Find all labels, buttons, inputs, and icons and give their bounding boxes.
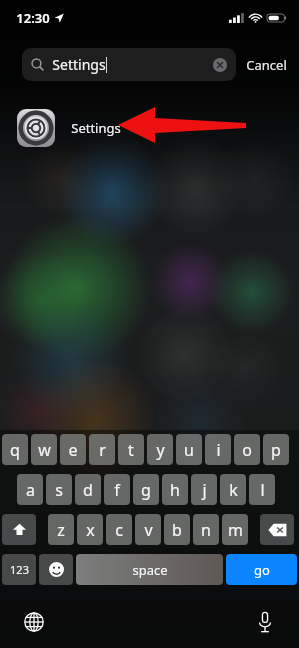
button[interactable]: z xyxy=(48,514,74,545)
button[interactable]: w xyxy=(31,434,57,465)
button[interactable]: r xyxy=(89,434,115,465)
button[interactable]: q xyxy=(2,434,28,465)
staticText: m xyxy=(228,519,243,541)
staticText: t xyxy=(128,439,134,461)
button[interactable]: u xyxy=(176,434,202,465)
button[interactable]: n xyxy=(193,514,219,545)
button[interactable]: y xyxy=(147,434,173,465)
staticText: j xyxy=(202,479,207,501)
button[interactable]: g xyxy=(133,474,159,505)
staticText: w xyxy=(38,439,51,461)
staticText: Settings xyxy=(71,119,121,137)
button[interactable]: k xyxy=(220,474,246,505)
staticText: c xyxy=(115,519,123,541)
button[interactable]: e xyxy=(60,434,86,465)
button[interactable]: space xyxy=(76,554,223,585)
staticText: p xyxy=(271,439,281,461)
staticText: g xyxy=(141,479,151,501)
button[interactable]: m xyxy=(222,514,248,545)
staticText: space xyxy=(132,561,168,579)
button[interactable]: Voice input xyxy=(251,608,279,636)
staticText: r xyxy=(99,439,106,461)
button[interactable]: c xyxy=(106,514,132,545)
button[interactable]: l xyxy=(249,474,275,505)
staticText: 123 xyxy=(10,562,29,577)
staticText: q xyxy=(10,439,20,461)
button[interactable]: s xyxy=(46,474,72,505)
staticText: s xyxy=(55,479,63,501)
staticText: x xyxy=(86,519,95,541)
button[interactable]: Change keyboard language xyxy=(20,608,48,636)
staticText: y xyxy=(156,439,165,461)
button[interactable]: Cancel xyxy=(236,50,297,80)
staticText: a xyxy=(26,479,35,501)
button[interactable]: b xyxy=(164,514,190,545)
button[interactable]: Settings xyxy=(0,104,299,152)
button[interactable]: j xyxy=(191,474,217,505)
button[interactable]: Shift xyxy=(2,514,36,545)
button[interactable]: go xyxy=(226,554,297,585)
button[interactable]: d xyxy=(75,474,101,505)
staticText: n xyxy=(201,519,211,541)
staticText: l xyxy=(260,479,265,501)
button[interactable]: a xyxy=(17,474,43,505)
staticText: u xyxy=(184,439,194,461)
button[interactable]: f xyxy=(104,474,130,505)
staticText: z xyxy=(57,519,65,541)
button[interactable]: Clear text xyxy=(213,58,227,72)
staticText: go xyxy=(254,561,270,579)
button[interactable]: h xyxy=(162,474,188,505)
button[interactable]: t xyxy=(118,434,144,465)
button[interactable]: Emoji xyxy=(39,554,73,585)
staticText: v xyxy=(144,519,153,541)
button[interactable]: Backspace xyxy=(260,514,294,545)
staticText: Cancel xyxy=(246,56,287,74)
button[interactable]: 123 xyxy=(2,554,36,585)
button[interactable]: v xyxy=(135,514,161,545)
button[interactable]: o xyxy=(234,434,260,465)
staticText: k xyxy=(229,479,238,501)
button[interactable]: Settings xyxy=(22,48,236,81)
button[interactable]: p xyxy=(263,434,289,465)
staticText: 12:30 xyxy=(16,9,50,27)
staticText: d xyxy=(83,479,93,501)
staticText: o xyxy=(242,439,252,461)
staticText: i xyxy=(216,439,221,461)
staticText: e xyxy=(68,439,78,461)
staticText: h xyxy=(170,479,180,501)
staticText: f xyxy=(114,479,120,501)
staticText: Settings xyxy=(52,55,106,74)
staticText: b xyxy=(172,519,182,541)
button[interactable]: x xyxy=(77,514,103,545)
button[interactable]: i xyxy=(205,434,231,465)
